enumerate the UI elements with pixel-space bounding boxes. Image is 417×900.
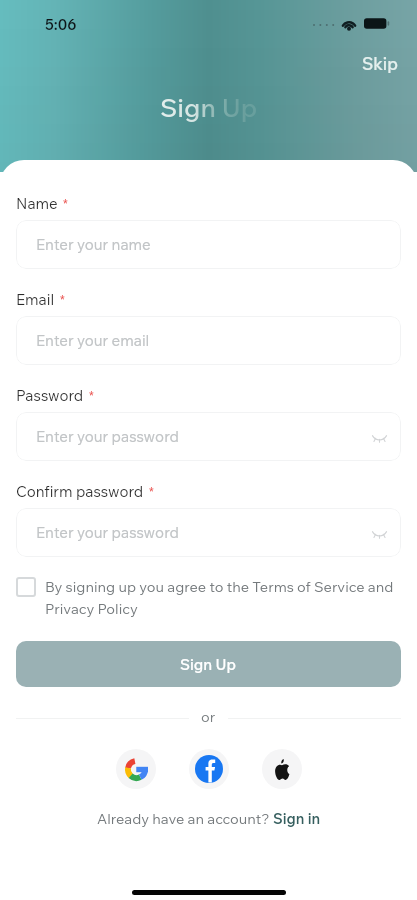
staticText: Sign Up <box>180 655 237 674</box>
button[interactable]: Enter your password <box>16 412 401 461</box>
button[interactable]: By signing up you agree to the Terms of … <box>16 577 401 618</box>
button[interactable]: Sign up with Apple <box>262 749 302 789</box>
staticText: Already have an account? <box>97 809 273 827</box>
staticText: * <box>89 387 94 402</box>
staticText: or <box>201 707 216 725</box>
button[interactable]: Sign in <box>273 809 321 827</box>
button[interactable]: Enter your email <box>16 316 401 365</box>
staticText: * <box>60 291 65 306</box>
staticText: Password <box>16 386 84 405</box>
button[interactable]: Sign up with Google <box>116 749 156 789</box>
staticText: By signing up you agree to the Terms of … <box>45 577 401 618</box>
staticText: Sign Up <box>160 91 258 124</box>
staticText: Enter your name <box>36 235 151 254</box>
button[interactable]: Skip <box>357 47 403 74</box>
staticText: * <box>63 195 68 210</box>
staticText: Name <box>16 194 58 213</box>
button[interactable]: Sign up with Facebook <box>189 749 229 789</box>
button[interactable]: Enter your name <box>16 220 401 269</box>
staticText: Skip <box>362 53 398 74</box>
staticText: * <box>149 483 154 498</box>
staticText: Enter your password <box>36 427 179 446</box>
staticText: Email <box>16 290 55 309</box>
staticText: Sign in <box>273 809 321 827</box>
button[interactable]: Enter your password <box>16 508 401 557</box>
staticText: 5:06 <box>45 15 77 34</box>
staticText: Enter your password <box>36 523 179 542</box>
staticText: Enter your email <box>36 331 150 350</box>
staticText: Confirm password <box>16 482 144 501</box>
button[interactable]: Sign Up <box>16 641 401 687</box>
